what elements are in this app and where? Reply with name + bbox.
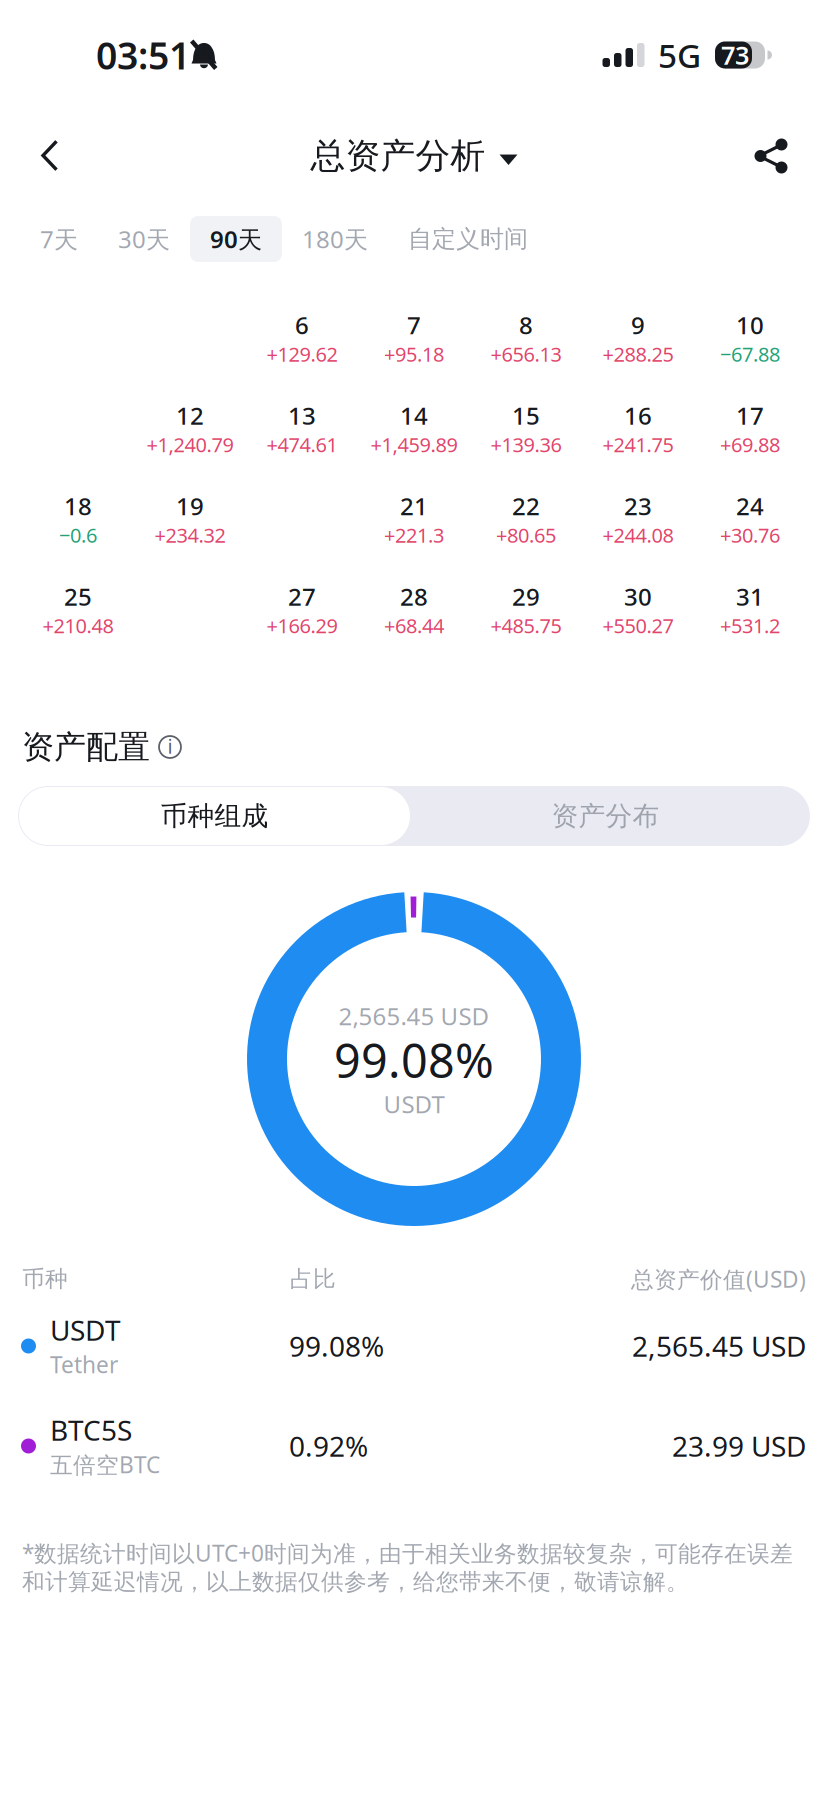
staticText: +210.48 [42,612,113,639]
staticText: *数据统计时间以UTC+0时间为准，由于相关业务数据较复杂，可能存在误差和计算延… [22,1538,793,1596]
staticText: +550.27 [602,612,673,639]
staticText: Tether [50,1349,118,1379]
staticText: 9 [631,309,645,341]
staticText: 资产分布 [551,800,659,832]
staticText: USDT [50,1311,121,1349]
staticText: +69.88 [720,431,780,458]
staticText: 5G [658,33,701,77]
staticText: +241.75 [602,431,673,458]
staticText: +485.75 [490,612,561,639]
staticText: +1,459.89 [370,431,457,458]
staticText: +234.32 [154,522,225,548]
staticText: 12 [176,400,204,431]
staticText: 五倍空BTC [50,1449,160,1479]
staticText: i [167,733,172,759]
button[interactable]: 自定义时间 [388,216,548,262]
staticText: 10 [736,309,764,341]
staticText: 6 [295,309,309,341]
staticText: 180天 [302,223,368,255]
staticText: USDT [383,1088,444,1120]
button[interactable]: BTC5S [0,1396,828,1496]
button[interactable]: Back [12,117,89,194]
button[interactable]: 90天 [190,216,282,262]
staticText: 27 [288,581,316,612]
staticText: 90天 [210,223,262,255]
staticText: 资产配置 [22,727,150,767]
button[interactable]: 180天 [282,216,388,262]
staticText: 19 [176,490,204,522]
staticText: 13 [288,400,316,431]
staticText: 7天 [40,223,78,255]
button[interactable]: 资产分布 [410,787,801,845]
staticText: 99.08% [289,1327,384,1365]
staticText: 30 [624,581,652,612]
staticText: 22 [512,490,540,522]
staticText: 73 [721,38,749,72]
button[interactable]: 币种组成 [19,787,410,845]
staticText: 21 [400,490,428,522]
staticText: 28 [400,581,428,612]
staticText: +221.3 [384,522,444,548]
staticText: 18 [64,490,92,522]
button[interactable]: 30天 [98,216,190,262]
staticText: +531.2 [720,612,780,639]
staticText: 币种组成 [160,800,268,832]
staticText: 自定义时间 [408,224,528,254]
button[interactable]: 7天 [20,216,98,262]
staticText: +95.18 [384,341,444,367]
staticText: 17 [736,400,764,431]
staticText: 2,565.45 USD [338,1000,489,1032]
staticText: +288.25 [602,341,673,367]
staticText: 25 [64,581,92,612]
button[interactable]: USDT [0,1296,828,1396]
staticText: 16 [624,400,652,431]
staticText: +30.76 [720,522,780,548]
staticText: +656.13 [490,341,561,367]
staticText: 占比 [290,1265,336,1293]
staticText: 23.99 USD [672,1427,806,1465]
staticText: +80.65 [496,522,556,548]
staticText: +129.62 [266,341,337,367]
staticText: BTC5S [50,1411,132,1449]
staticText: 14 [400,400,428,431]
staticText: 7 [407,309,421,341]
staticText: −0.6 [59,522,97,548]
staticText: 30天 [118,223,170,255]
staticText: 31 [736,581,764,612]
staticText: 24 [736,490,764,522]
staticText: 2,565.45 USD [632,1327,806,1365]
staticText: 23 [624,490,652,522]
staticText: 15 [512,400,540,431]
staticText: 总资产分析 [310,135,485,177]
staticText: +244.08 [602,522,673,548]
staticText: 币种 [22,1265,68,1293]
staticText: 29 [512,581,540,612]
button[interactable]: Share [726,116,816,196]
staticText: +1,240.79 [146,431,233,458]
staticText: 总资产价值(USD) [631,1264,806,1294]
staticText: +68.44 [384,612,444,639]
staticText: 8 [519,309,533,341]
staticText: 99.08% [334,1029,494,1091]
staticText: 03:51 [96,30,190,80]
staticText: −67.88 [720,341,780,367]
staticText: 0.92% [289,1427,368,1465]
staticText: +474.61 [266,431,337,458]
staticText: +139.36 [490,431,561,458]
staticText: +166.29 [266,612,337,639]
